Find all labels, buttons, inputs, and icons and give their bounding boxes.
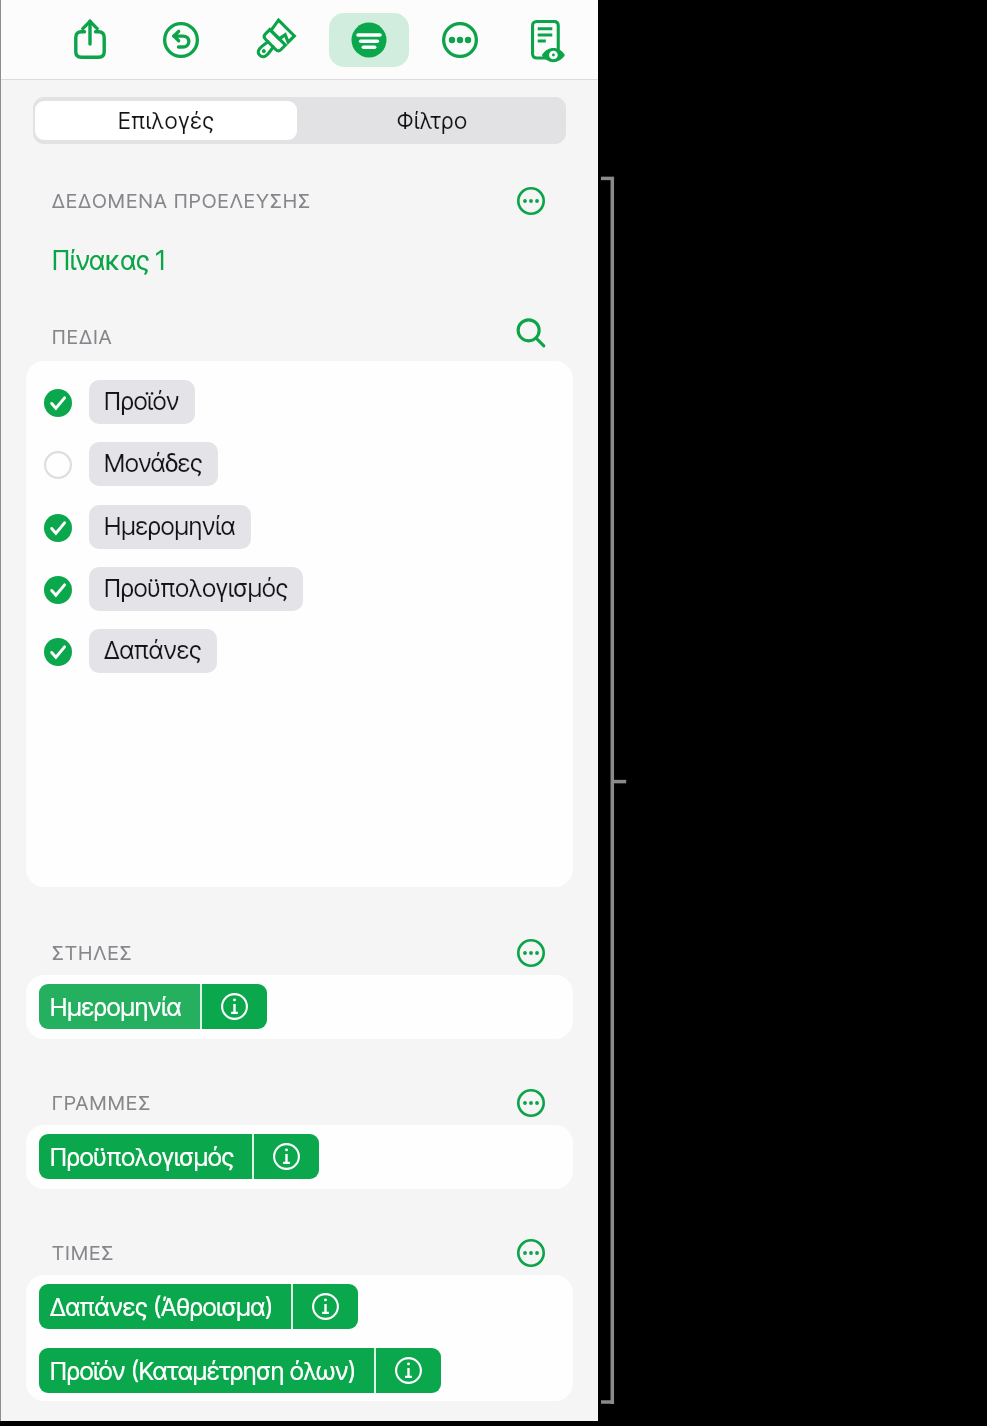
staticText: Δαπάνες (Άθροισμα) bbox=[50, 1292, 273, 1322]
staticText: Επιλογές bbox=[118, 107, 215, 135]
staticText: Φίλτρο bbox=[397, 107, 468, 135]
button[interactable]: Info about Προϊόν (Καταμέτρηση όλων) bbox=[376, 1348, 441, 1393]
button[interactable]: Columns options bbox=[517, 939, 545, 967]
button[interactable]: Προϋπολογισμός bbox=[26, 559, 573, 621]
button[interactable]: Ημερομηνία bbox=[26, 497, 573, 559]
staticText: ΔΕΔΟΜΕΝΑ ΠΡΟΕΛΕΥΣΗΣ bbox=[52, 189, 312, 213]
button[interactable]: Share bbox=[50, 12, 130, 66]
staticText: Ημερομηνία bbox=[50, 992, 182, 1022]
button[interactable]: Values options bbox=[517, 1239, 545, 1267]
button[interactable]: Μονάδες bbox=[26, 434, 573, 496]
staticText: ΠΕΔΙΑ bbox=[52, 325, 113, 349]
staticText: Προϋπολογισμός bbox=[50, 1142, 234, 1172]
staticText: Προϊόν (Καταμέτρηση όλων) bbox=[50, 1356, 356, 1386]
staticText: Μονάδες bbox=[104, 448, 203, 478]
button[interactable]: Info about Ημερομηνία bbox=[202, 984, 267, 1029]
button[interactable]: Undo bbox=[141, 13, 221, 67]
staticText: ΤΙΜΕΣ bbox=[52, 1241, 115, 1265]
button[interactable]: Source data options bbox=[517, 187, 545, 215]
button[interactable]: Preview bbox=[508, 15, 588, 69]
staticText: Δαπάνες bbox=[104, 635, 202, 665]
button[interactable]: Format bbox=[235, 13, 315, 67]
button[interactable]: More bbox=[420, 13, 500, 67]
button[interactable]: Info about Δαπάνες (Άθροισμα) bbox=[293, 1284, 358, 1329]
button[interactable]: Φίλτρο bbox=[299, 97, 566, 144]
staticText: Πίνακας 1 bbox=[52, 244, 165, 276]
button[interactable]: Επιλογές bbox=[35, 101, 297, 140]
button[interactable]: Ημερομηνία bbox=[39, 984, 267, 1029]
staticText: Προϋπολογισμός bbox=[104, 573, 288, 603]
button[interactable]: Προϊόν (Καταμέτρηση όλων) bbox=[39, 1348, 441, 1393]
button[interactable]: Organize bbox=[329, 13, 409, 67]
staticText: ΓΡΑΜΜΕΣ bbox=[52, 1091, 152, 1115]
button[interactable]: Προϋπολογισμός bbox=[39, 1134, 319, 1179]
button[interactable]: Search fields bbox=[515, 320, 545, 350]
button[interactable]: Δαπάνες (Άθροισμα) bbox=[39, 1284, 358, 1329]
button[interactable]: Info about Προϋπολογισμός bbox=[254, 1134, 319, 1179]
button[interactable]: Προϊόν bbox=[26, 372, 573, 434]
staticText: ΣΤΗΛΕΣ bbox=[52, 941, 133, 965]
button[interactable]: Rows options bbox=[517, 1089, 545, 1117]
staticText: Ημερομηνία bbox=[104, 511, 236, 541]
button[interactable]: Δαπάνες bbox=[26, 621, 573, 683]
staticText: Προϊόν bbox=[104, 386, 180, 416]
